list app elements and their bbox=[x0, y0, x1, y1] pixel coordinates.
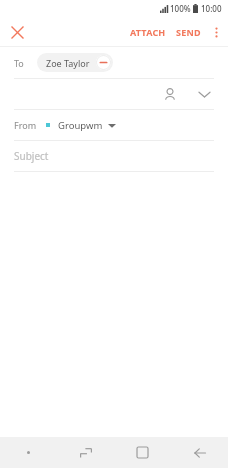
button[interactable]: More options bbox=[206, 22, 226, 42]
staticText: ATTACH bbox=[130, 26, 166, 38]
button[interactable]: Expand recipients bbox=[192, 82, 216, 106]
button[interactable]: To bbox=[0, 47, 228, 78]
staticText: SEND bbox=[176, 26, 201, 38]
button[interactable]: SEND bbox=[171, 20, 206, 44]
staticText: From bbox=[14, 119, 37, 131]
staticText: Subject bbox=[14, 149, 49, 163]
button[interactable]: From bbox=[0, 110, 228, 140]
button[interactable]: Zoe Taylor bbox=[37, 53, 113, 72]
button[interactable]: Subject bbox=[0, 141, 228, 171]
button[interactable]: Notifications bbox=[0, 437, 57, 468]
staticText: Zoe Taylor bbox=[46, 57, 90, 69]
staticText: Groupwm bbox=[58, 119, 103, 132]
button[interactable]: ATTACH bbox=[125, 20, 171, 44]
button[interactable]: Close bbox=[6, 21, 28, 43]
button[interactable]: Add contact bbox=[158, 82, 182, 106]
staticText: To bbox=[14, 57, 24, 69]
button[interactable]: Home bbox=[114, 437, 171, 468]
staticText: 10:00 bbox=[201, 3, 222, 14]
button[interactable]: Remove recipient bbox=[96, 55, 111, 70]
button[interactable]: Back bbox=[171, 437, 228, 468]
staticText: 100% bbox=[170, 3, 191, 14]
button[interactable]: Recents bbox=[57, 437, 114, 468]
